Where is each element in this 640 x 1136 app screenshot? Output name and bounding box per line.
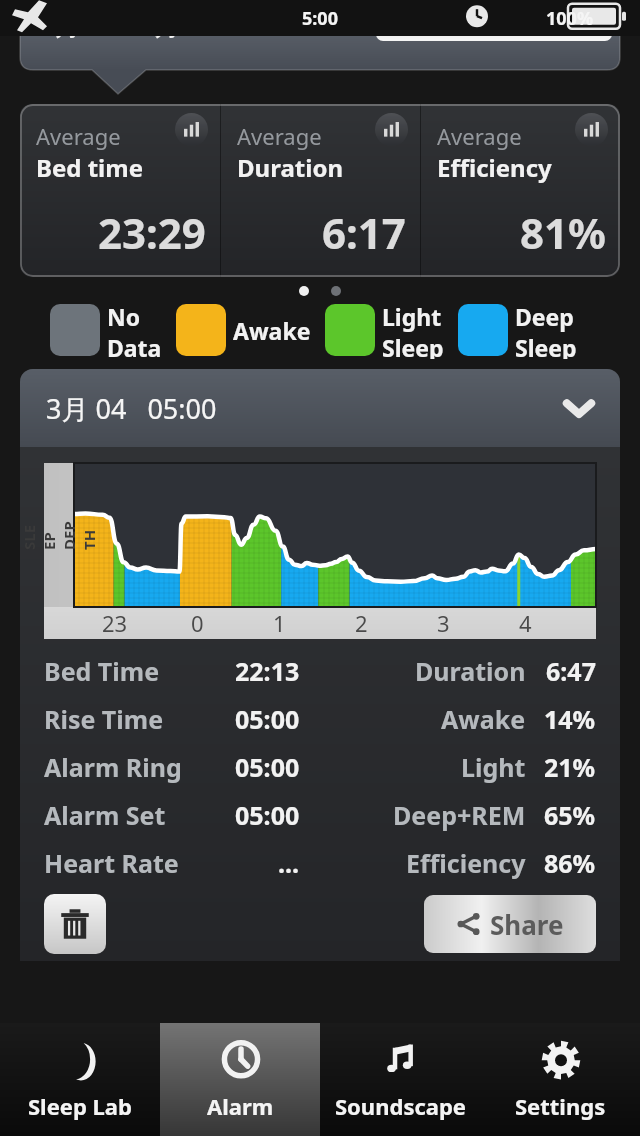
staticText: Sleep <box>515 332 577 359</box>
staticText: 3 <box>437 608 450 638</box>
staticText: 3月 04 05:00 <box>46 390 217 427</box>
staticText: Alarm Set <box>44 798 166 832</box>
staticText: Sleep Lab <box>28 1091 132 1121</box>
staticText: 86% <box>544 846 596 880</box>
staticText: Light <box>461 750 526 784</box>
staticText: Bed time <box>36 151 144 184</box>
staticText: 4 <box>519 608 532 638</box>
staticText: SLEEP DEPTH <box>20 520 99 550</box>
staticText: 23:29 <box>98 204 206 261</box>
staticText: Efficiency <box>437 151 552 184</box>
staticText: 2 <box>355 608 368 638</box>
staticText: No <box>107 301 141 332</box>
staticText: Settings <box>515 1091 606 1121</box>
staticText: 05:00 <box>235 798 300 832</box>
staticText: Heart Rate <box>44 846 179 880</box>
staticText: 05:00 <box>235 702 300 736</box>
button[interactable]: Average <box>421 104 620 277</box>
staticText: Bed Time <box>44 654 160 688</box>
staticText: Duration <box>415 654 526 688</box>
button[interactable]: 3月 04 05:00 <box>20 369 620 447</box>
button[interactable]: Settings <box>480 1023 640 1136</box>
staticText: Alarm <box>207 1091 274 1121</box>
staticText: 6:17 <box>322 204 406 261</box>
button[interactable]: Show Bed time chart <box>175 113 208 146</box>
staticText: Soundscape <box>335 1091 466 1121</box>
staticText: Light <box>382 301 442 332</box>
button[interactable]: Week <box>376 5 494 41</box>
button[interactable]: Average <box>221 104 420 277</box>
staticText: Awake <box>441 702 526 736</box>
button[interactable]: Sleep Lab <box>0 1023 160 1136</box>
staticText: Sleep <box>382 332 444 359</box>
staticText: Deep+REM <box>393 798 526 832</box>
staticText: 6:47 <box>546 654 596 688</box>
staticText: 81% <box>520 204 606 261</box>
staticText: Deep <box>515 301 574 332</box>
staticText: 100% <box>546 6 594 31</box>
staticText: Week <box>406 9 464 38</box>
button[interactable]: Alarm <box>160 1023 320 1136</box>
staticText: Average <box>437 121 522 151</box>
staticText: 05:00 <box>235 750 300 784</box>
staticText: Rise Time <box>44 702 164 736</box>
button[interactable]: Soundscape <box>320 1023 480 1136</box>
staticText: Awake <box>233 315 311 346</box>
staticText: Average <box>237 121 322 151</box>
other: Collapse session <box>562 391 596 425</box>
button[interactable]: Month <box>494 5 612 41</box>
staticText: 5:00 <box>302 6 338 31</box>
staticText: 1 <box>273 608 286 638</box>
button[interactable]: Show Duration chart <box>375 113 408 146</box>
staticText: Average <box>36 121 121 151</box>
staticText: ... <box>278 846 300 880</box>
staticText: Efficiency <box>406 846 526 880</box>
staticText: 2月 25 - 3月 3 <box>40 7 202 43</box>
staticText: 21% <box>544 750 596 784</box>
staticText: 65% <box>544 798 596 832</box>
button[interactable]: Delete <box>44 894 106 954</box>
staticText: Share <box>490 907 564 942</box>
staticText: 14% <box>544 702 596 736</box>
staticText: Duration <box>237 151 343 184</box>
staticText: Data <box>107 332 162 359</box>
button[interactable]: Show Efficiency chart <box>575 113 608 146</box>
staticText: 23 <box>102 608 128 638</box>
staticText: Month <box>518 9 588 38</box>
button[interactable]: Share <box>424 895 596 953</box>
staticText: Alarm Ring <box>44 750 182 784</box>
button[interactable]: Average <box>20 104 220 277</box>
staticText: 22:13 <box>235 654 300 688</box>
staticText: 0 <box>191 608 204 638</box>
